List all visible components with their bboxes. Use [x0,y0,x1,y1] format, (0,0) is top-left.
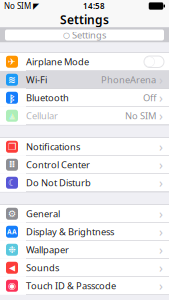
staticText: Display & Brightness [26,226,114,238]
button[interactable]: ❉ [0,241,169,259]
staticText: ✈ [8,56,16,67]
staticText: Control Center [26,159,90,171]
staticText: Do Not Disturb [26,177,91,189]
staticText: › [159,206,163,222]
button[interactable]: ᛒ [0,89,169,107]
staticText: Cellular [26,110,58,122]
staticText: PhoneArena [101,74,156,86]
button[interactable]: ▲ [0,107,169,125]
staticText: › [159,72,163,88]
staticText: 14:58 [83,1,105,11]
staticText: General [26,208,60,220]
staticText: Settings [60,11,109,27]
staticText: Bluetooth [26,92,69,104]
staticText: › [159,224,163,240]
staticText: No SIM [4,1,31,11]
button[interactable]: ❐ [0,138,169,156]
staticText: Notifications [26,141,80,153]
button[interactable]: ✈ [0,53,169,71]
staticText: Off [143,92,156,104]
staticText: Touch ID & Passcode [26,280,116,292]
button[interactable]: ◀ [0,259,169,277]
button[interactable]: ≋ [0,71,169,89]
button[interactable]: AA [0,223,169,241]
staticText: › [159,139,163,155]
staticText: › [159,242,163,258]
button[interactable]: Search Settings [0,29,169,40]
staticText: › [159,278,163,294]
staticText: No SIM [125,110,156,122]
staticText: ○ [63,30,70,40]
staticText: ▲ [9,111,15,120]
staticText: › [159,90,163,106]
staticText: ❉ [8,244,16,255]
staticText: Sounds [26,262,59,274]
staticText: ⠿ [8,159,15,170]
staticText: ◉ [8,280,16,291]
staticText: ◤ [33,1,39,11]
staticText: ⚙ [8,208,16,219]
button[interactable]: ⠿ [0,156,169,174]
button[interactable]: ◉ [0,277,169,295]
button[interactable]: ☾ [0,174,169,192]
staticText: Wi-Fi [26,74,47,86]
staticText: ❐ [8,141,16,152]
staticText: ☾ [8,177,16,188]
staticText: › [159,157,163,173]
staticText: › [159,260,163,276]
staticText: Airplane Mode [26,56,89,68]
staticText: AA [7,227,17,236]
staticText: › [159,175,163,191]
staticText: › [159,108,163,124]
button[interactable]: ⚙ [0,205,169,223]
staticText: Settings [72,29,106,41]
staticText: ᛒ [9,92,14,104]
staticText: ≋ [8,74,16,85]
staticText: ◀ [9,263,15,272]
staticText: Wallpaper [26,244,69,256]
